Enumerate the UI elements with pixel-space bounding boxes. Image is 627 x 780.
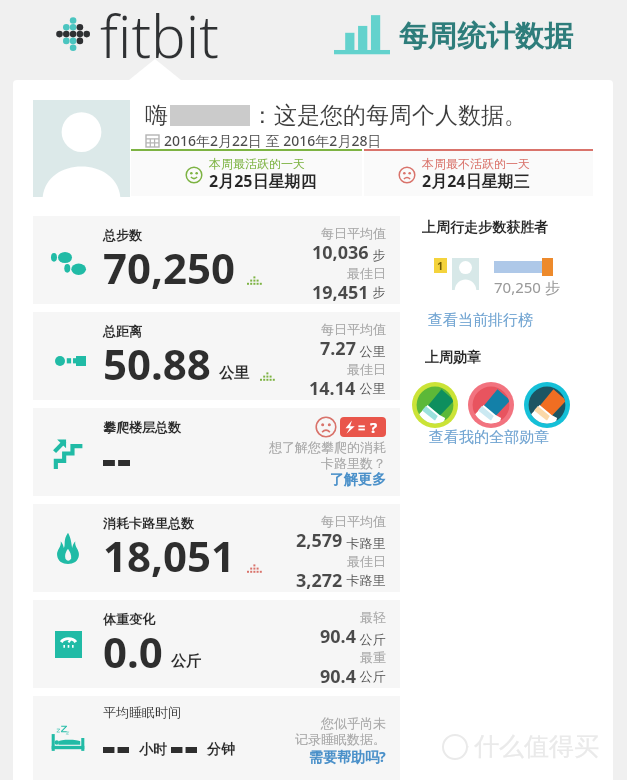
button[interactable]: 总距离: [33, 312, 400, 400]
staticText: ?: [370, 417, 378, 437]
staticText: 19,451: [312, 280, 369, 302]
button[interactable]: 体重变化: [33, 600, 400, 688]
staticText: 18,051: [103, 527, 236, 584]
staticText: 总步数: [103, 227, 142, 243]
staticText: 50.88: [103, 335, 211, 392]
staticText: 嗨: [145, 101, 168, 130]
button[interactable]: 本周最活跃的一天: [131, 149, 362, 196]
staticText: 攀爬楼层总数: [103, 419, 181, 435]
staticText: 最佳日: [347, 553, 386, 569]
staticText: 7.27: [320, 336, 356, 361]
staticText: 最轻: [360, 609, 386, 625]
button[interactable]: 了解更多: [330, 471, 386, 489]
staticText: 总距离: [103, 323, 142, 339]
staticText: 卡路里数？: [321, 455, 386, 471]
staticText: 每日平均值: [321, 321, 386, 337]
button[interactable]: 1: [434, 258, 560, 297]
staticText: 公斤: [171, 652, 201, 671]
staticText: 2016年2月22日 至 2016年2月28日: [164, 131, 382, 150]
button[interactable]: 总步数: [33, 216, 400, 304]
staticText: 最佳日: [347, 265, 386, 281]
button[interactable]: 提示: [340, 417, 386, 437]
staticText: 平均睡眠时间: [103, 704, 181, 720]
staticText: 卡路里: [343, 571, 386, 589]
button[interactable]: 本周最不活跃的一天: [364, 149, 593, 196]
staticText: 10,036: [312, 240, 369, 265]
button[interactable]: 消耗卡路里总数: [33, 504, 400, 592]
staticText: 公里: [219, 364, 249, 383]
staticText: 体重变化: [103, 611, 155, 627]
button[interactable]: 上周勋章: [425, 349, 481, 367]
staticText: 公斤: [356, 667, 386, 685]
staticText: 分钟: [207, 741, 235, 759]
staticText: 步: [369, 283, 386, 301]
staticText: 小时: [139, 741, 167, 759]
staticText: 14.14: [309, 376, 356, 398]
button[interactable]: 需要帮助吗?: [309, 747, 386, 766]
staticText: 想了解您攀爬的消耗: [269, 439, 386, 455]
staticText: 最重: [360, 649, 386, 665]
staticText: ：这是您的每周个人数据。: [251, 101, 527, 130]
staticText: 每周统计数据: [399, 18, 573, 55]
staticText: 2月24日星期三: [422, 170, 530, 192]
staticText: 70,250: [103, 239, 236, 296]
staticText: 公里: [356, 379, 386, 397]
staticText: 2月25日星期四: [209, 170, 317, 192]
staticText: 记录睡眠数据。: [295, 731, 386, 747]
button[interactable]: 勋章: [524, 382, 570, 428]
button[interactable]: 查看当前排行榜: [428, 311, 533, 330]
staticText: 1: [437, 258, 444, 273]
button[interactable]: 勋章: [412, 382, 458, 428]
staticText: 消耗卡路里总数: [103, 515, 194, 531]
button[interactable]: 平均睡眠时间: [33, 696, 400, 780]
button[interactable]: 攀爬楼层总数: [33, 408, 400, 496]
staticText: 每日平均值: [321, 225, 386, 241]
staticText: 公里: [356, 342, 386, 360]
staticText: 2,579: [296, 528, 343, 553]
button[interactable]: 上周行走步数获胜者: [422, 219, 548, 237]
staticText: 您似乎尚未: [321, 715, 386, 731]
staticText: 70,250 步: [494, 277, 560, 297]
staticText: 90.4: [320, 664, 356, 686]
staticText: 每日平均值: [321, 513, 386, 529]
staticText: 最佳日: [347, 361, 386, 377]
staticText: 步: [369, 246, 386, 264]
staticText: 什么值得买: [474, 731, 599, 762]
staticText: fitbit: [100, 0, 220, 75]
staticText: 3,272: [296, 568, 343, 590]
button[interactable]: 查看我的全部勋章: [429, 428, 549, 447]
staticText: 0.0: [103, 623, 163, 680]
staticText: 公斤: [356, 630, 386, 648]
staticText: 本周最活跃的一天: [209, 156, 305, 171]
staticText: 卡路里: [343, 534, 386, 552]
staticText: 本周最不活跃的一天: [422, 156, 530, 171]
staticText: 90.4: [320, 624, 356, 649]
button[interactable]: 勋章: [468, 382, 514, 428]
